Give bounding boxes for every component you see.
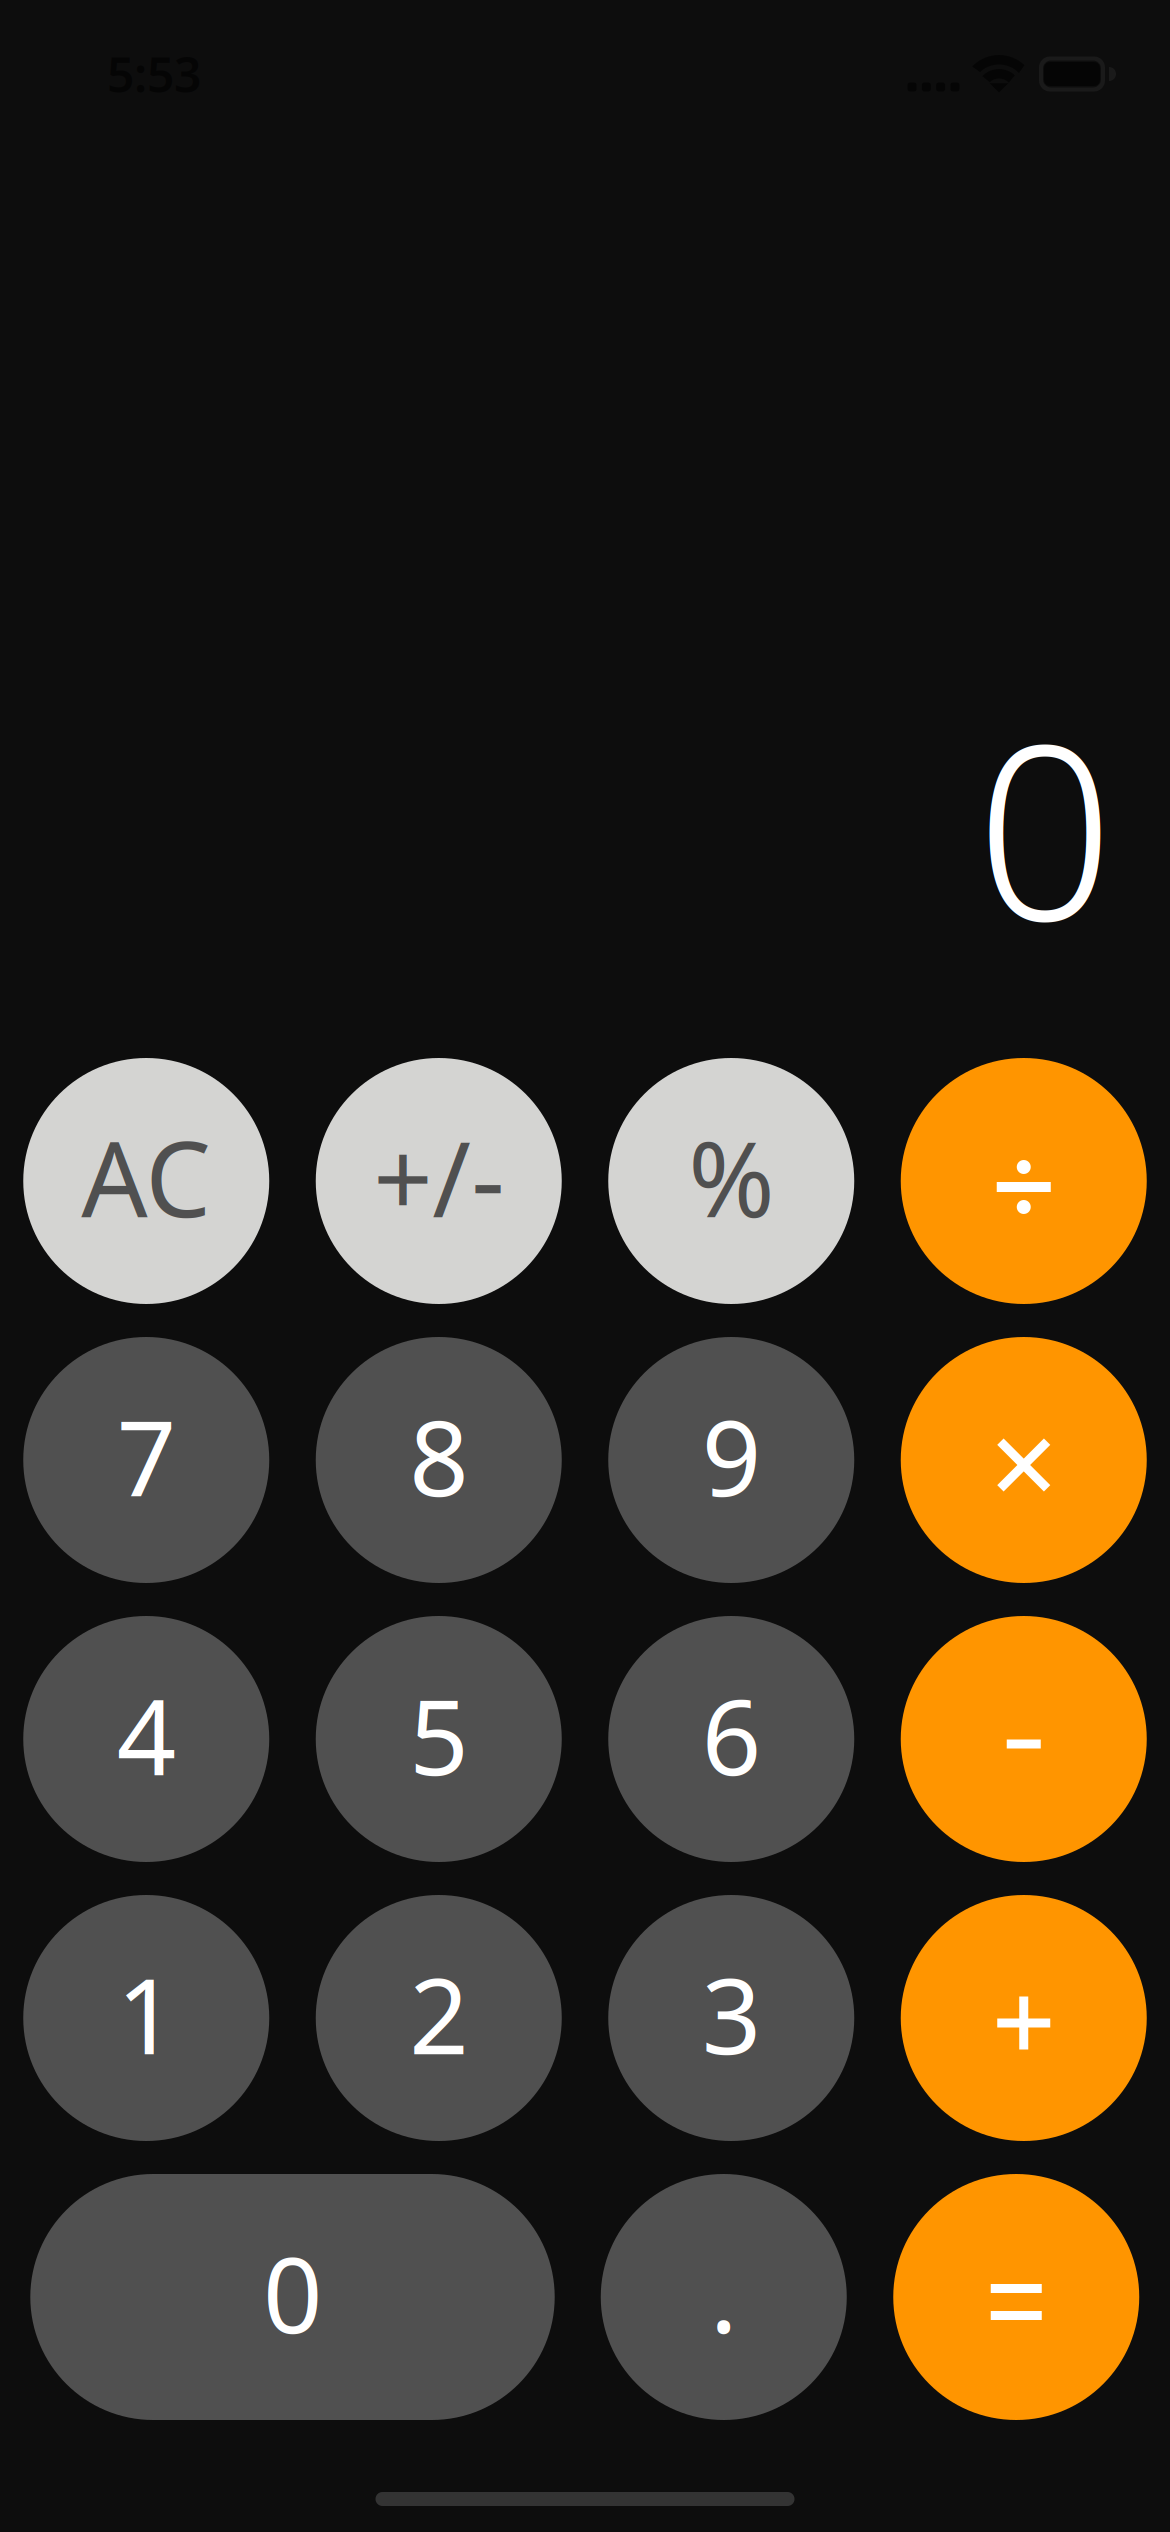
staticText: 7 bbox=[117, 1387, 176, 1525]
button[interactable]: 7 bbox=[23, 1337, 269, 1583]
button[interactable]: 9 bbox=[608, 1337, 854, 1583]
staticText: 0 bbox=[263, 2224, 322, 2362]
staticText: AC bbox=[81, 1108, 211, 1246]
button[interactable]: 2 bbox=[316, 1895, 562, 2141]
staticText: 5:53 bbox=[107, 42, 201, 106]
button[interactable]: Multiply bbox=[901, 1337, 1147, 1583]
button[interactable]: Percent bbox=[608, 1058, 854, 1304]
button[interactable]: Decimal point bbox=[601, 2174, 847, 2420]
staticText: 8 bbox=[409, 1387, 468, 1525]
button[interactable]: 1 bbox=[23, 1895, 269, 2141]
staticText: 5 bbox=[409, 1666, 468, 1804]
staticText: 6 bbox=[702, 1666, 761, 1804]
button[interactable]: Equals bbox=[893, 2174, 1139, 2420]
button[interactable]: 5 bbox=[316, 1616, 562, 1862]
button[interactable]: AC bbox=[23, 1058, 269, 1304]
button[interactable]: 6 bbox=[608, 1616, 854, 1862]
button[interactable]: Plus bbox=[901, 1895, 1147, 2141]
staticText: 1 bbox=[117, 1945, 176, 2083]
button[interactable]: 8 bbox=[316, 1337, 562, 1583]
button[interactable]: 0 bbox=[30, 2174, 555, 2420]
staticText: 2 bbox=[409, 1945, 468, 2083]
staticText: % bbox=[688, 1108, 774, 1246]
staticText: 9 bbox=[702, 1387, 761, 1525]
staticText: 0 bbox=[976, 666, 1114, 987]
button[interactable]: Minus bbox=[901, 1616, 1147, 1862]
button[interactable]: 3 bbox=[608, 1895, 854, 2141]
staticText: +/- bbox=[373, 1108, 504, 1246]
button[interactable]: 4 bbox=[23, 1616, 269, 1862]
staticText: 3 bbox=[702, 1945, 761, 2083]
button[interactable]: Divide bbox=[901, 1058, 1147, 1304]
staticText: . bbox=[710, 2224, 738, 2362]
button[interactable]: Plus minus bbox=[316, 1058, 562, 1304]
staticText: 4 bbox=[117, 1666, 176, 1804]
